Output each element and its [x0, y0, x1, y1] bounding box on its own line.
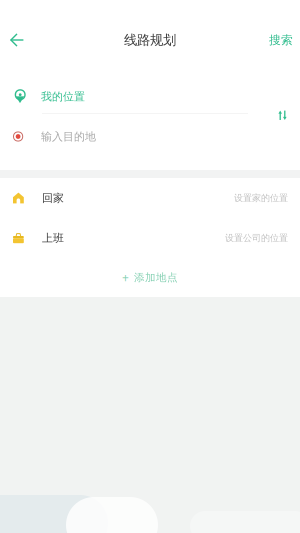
staticText: 设置公司的位置 [225, 232, 288, 244]
staticText: 线路规划 [124, 32, 176, 48]
button[interactable]: Back [0, 18, 34, 62]
button[interactable]: + [0, 258, 300, 297]
button[interactable]: Swap origin and destination [262, 95, 300, 135]
staticText: 输入目的地 [41, 130, 96, 143]
button[interactable]: 上班 [0, 218, 300, 258]
staticText: 搜索 [269, 33, 293, 47]
staticText: 添加地点 [134, 271, 178, 284]
staticText: 设置家的位置 [234, 192, 288, 204]
staticText: 我的位置 [41, 90, 85, 103]
staticText: 回家 [42, 191, 64, 205]
staticText: + [122, 269, 129, 286]
button[interactable]: 搜索 [262, 18, 300, 62]
staticText: 上班 [42, 231, 64, 245]
button[interactable]: 回家 [0, 178, 300, 218]
